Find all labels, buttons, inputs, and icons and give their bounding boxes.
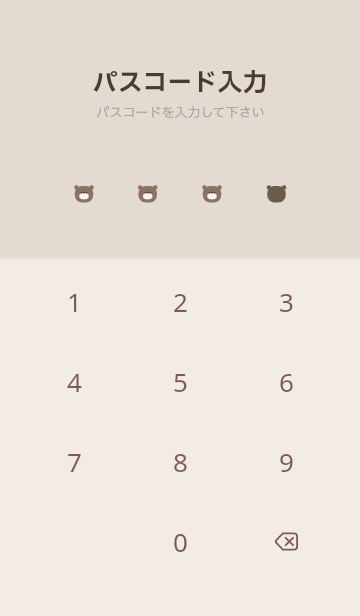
button[interactable]: 2 [127,261,233,341]
staticText: 6 [279,364,294,399]
staticText: パスコードを入力して下さい [96,103,265,122]
button[interactable]: 6 [233,341,339,421]
staticText: パスコード入力 [92,65,268,102]
staticText: 2 [173,284,188,319]
button[interactable]: 3 [233,261,339,341]
staticText: 0 [173,524,188,559]
staticText: 7 [67,444,82,479]
button[interactable]: 1 [21,261,127,341]
staticText: 4 [67,364,82,399]
staticText: 8 [173,444,188,479]
other: Delete [266,524,306,558]
button[interactable]: 0 [127,501,233,581]
button[interactable]: 5 [127,341,233,421]
button[interactable]: 7 [21,421,127,501]
staticText: 9 [279,444,294,479]
button[interactable]: 4 [21,341,127,421]
button[interactable]: Delete [233,501,339,581]
staticText: 3 [279,284,294,319]
button[interactable]: 8 [127,421,233,501]
staticText: 1 [67,284,82,319]
staticText: 5 [173,364,188,399]
button[interactable]: 9 [233,421,339,501]
